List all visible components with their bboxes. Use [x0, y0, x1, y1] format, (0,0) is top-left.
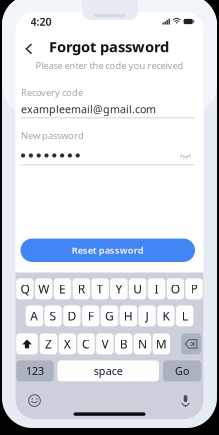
- button[interactable]: Z: [40, 333, 57, 354]
- staticText: A: [30, 308, 38, 324]
- staticText: N: [138, 336, 147, 352]
- staticText: Forgot password: [49, 37, 169, 56]
- button[interactable]: O: [167, 278, 184, 299]
- staticText: P: [191, 281, 198, 297]
- staticText: F: [88, 308, 94, 324]
- button[interactable]: Shift: [16, 333, 38, 354]
- button[interactable]: B: [115, 333, 132, 354]
- button[interactable]: Show password: [177, 149, 193, 163]
- button[interactable]: M: [153, 333, 170, 354]
- button[interactable]: W: [35, 278, 52, 299]
- staticText: Go: [175, 364, 189, 378]
- staticText: M: [156, 336, 167, 352]
- button[interactable]: X: [59, 333, 76, 354]
- button[interactable]: Back: [19, 39, 39, 59]
- staticText: 4:20: [30, 14, 51, 29]
- button[interactable]: P: [185, 278, 203, 299]
- button[interactable]: Reset password: [20, 238, 195, 262]
- staticText: K: [162, 308, 169, 324]
- staticText: H: [124, 308, 133, 324]
- staticText: Please enter the code you received: [35, 59, 183, 72]
- button[interactable]: G: [101, 305, 118, 326]
- button[interactable]: C: [77, 333, 95, 354]
- staticText: J: [146, 308, 149, 324]
- staticText: U: [133, 281, 142, 297]
- button[interactable]: F: [82, 305, 99, 326]
- button[interactable]: Emoji keyboard: [26, 393, 42, 409]
- button[interactable]: S: [44, 305, 62, 326]
- staticText: R: [78, 281, 85, 297]
- button[interactable]: I: [148, 278, 165, 299]
- button[interactable]: K: [157, 305, 175, 326]
- staticText: Reset password: [72, 244, 144, 256]
- staticText: I: [154, 281, 158, 297]
- staticText: Y: [115, 281, 122, 297]
- button[interactable]: L: [176, 305, 193, 326]
- button[interactable]: T: [91, 278, 109, 299]
- staticText: E: [59, 281, 66, 297]
- button[interactable]: R: [73, 278, 90, 299]
- staticText: L: [182, 308, 188, 324]
- staticText: W: [38, 281, 49, 297]
- staticText: space: [94, 364, 123, 378]
- button[interactable]: Go: [163, 360, 201, 381]
- button[interactable]: D: [63, 305, 81, 326]
- button[interactable]: Dictate: [177, 393, 193, 409]
- button[interactable]: V: [96, 333, 114, 354]
- staticText: Recovery code: [21, 86, 83, 99]
- button[interactable]: 123: [16, 360, 54, 381]
- staticText: S: [50, 308, 57, 324]
- button[interactable]: N: [134, 333, 151, 354]
- staticText: O: [171, 281, 180, 297]
- button[interactable]: H: [120, 305, 137, 326]
- staticText: exampleemail@gmail.com: [21, 102, 156, 116]
- button[interactable]: Delete: [181, 333, 201, 354]
- staticText: Z: [45, 336, 52, 352]
- staticText: C: [82, 336, 90, 352]
- button[interactable]: Y: [110, 278, 128, 299]
- staticText: G: [105, 308, 114, 324]
- button[interactable]: E: [54, 278, 71, 299]
- staticText: D: [67, 308, 76, 324]
- staticText: 123: [26, 364, 44, 378]
- staticText: X: [64, 336, 71, 352]
- staticText: T: [97, 281, 104, 297]
- button[interactable]: U: [129, 278, 146, 299]
- button[interactable]: Q: [16, 278, 34, 299]
- staticText: New password: [21, 129, 84, 142]
- button[interactable]: J: [138, 305, 156, 326]
- staticText: V: [101, 336, 108, 352]
- staticText: Q: [20, 281, 29, 297]
- staticText: B: [120, 336, 128, 352]
- button[interactable]: A: [26, 305, 43, 326]
- button[interactable]: space: [57, 360, 159, 381]
